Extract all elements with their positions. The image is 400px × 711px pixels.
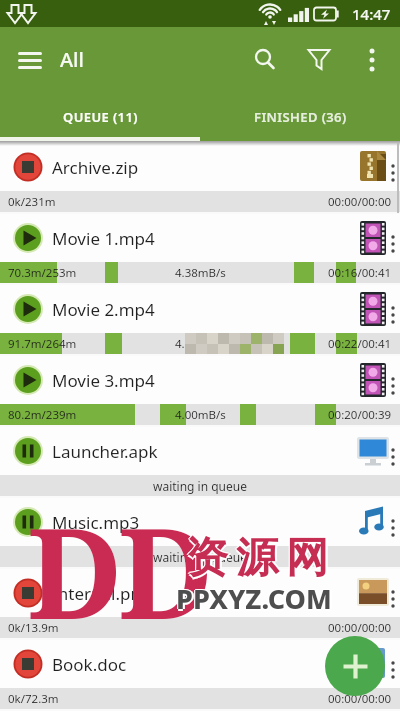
button[interactable]: Launcher.apk (0, 427, 400, 475)
button[interactable] (325, 636, 385, 696)
staticText: Book.doc (52, 653, 127, 676)
button[interactable] (352, 40, 392, 80)
button[interactable]: Book.doc (0, 640, 400, 688)
staticText: 00:20/00:39 (328, 407, 392, 423)
staticText: 0k/13.9m (8, 620, 59, 636)
staticText: 00:16/00:41 (328, 265, 392, 281)
staticText: Movie 1.mp4 (52, 227, 155, 250)
staticText: PPXYZ.COM (178, 580, 334, 617)
staticText: Music.mp3 (52, 511, 140, 534)
staticText: waiting in queue (153, 478, 247, 494)
staticText: FINISHED (36) (254, 108, 347, 126)
staticText: 资源网 (184, 532, 334, 585)
staticText: QUEUE (11) (63, 108, 138, 126)
button[interactable] (245, 40, 285, 80)
button[interactable]: Archive.zip (0, 143, 400, 191)
staticText: PPXYZ.COM (176, 580, 332, 617)
staticText: 80.2m/239m (8, 407, 77, 423)
button[interactable]: QUEUE (11) (0, 93, 200, 141)
button[interactable]: Movie 2.mp4 (0, 285, 400, 333)
staticText: 0k/231m (8, 194, 56, 210)
button[interactable] (298, 39, 340, 81)
staticText: 4.00mB/s (175, 407, 226, 423)
staticText: 14:47 (352, 4, 391, 24)
staticText: 4.38mB/s (175, 265, 226, 281)
button[interactable]: Internal.png (0, 569, 400, 617)
staticText: waiting in queue (153, 549, 247, 565)
staticText: Movie 2.mp4 (52, 298, 155, 321)
staticText: Launcher.apk (52, 440, 158, 463)
staticText: Internal.png (52, 582, 152, 605)
staticText: PPXYZ.COM (176, 579, 332, 616)
staticText: Movie 3.mp4 (52, 369, 155, 392)
staticText: PPXYZ.COM (176, 582, 332, 619)
staticText: 00:00/00:00 (328, 194, 392, 210)
staticText: 00:22/00:41 (328, 336, 392, 352)
button[interactable]: Movie 3.mp4 (0, 356, 400, 404)
staticText: 资源网 (182, 532, 332, 585)
staticText: All (60, 46, 84, 73)
button[interactable]: Music.mp3 (0, 498, 400, 546)
staticText: 资源网 (182, 534, 332, 587)
staticText: 资源网 (182, 531, 332, 584)
staticText: 0k/72.3m (8, 691, 59, 707)
button[interactable]: FINISHED (36) (200, 93, 400, 141)
staticText: 00:00/00:00 (328, 620, 392, 636)
staticText: 70.3m/253m (8, 265, 77, 281)
staticText: PPXYZ.COM (175, 580, 331, 617)
staticText: Archive.zip (52, 156, 139, 179)
staticText: 00:00/00:00 (328, 691, 392, 707)
staticText: DD (27, 485, 209, 655)
button[interactable]: Movie 1.mp4 (0, 214, 400, 262)
staticText: 91.7m/264m (8, 336, 77, 352)
staticText: 4.38mB/s (175, 336, 226, 352)
button[interactable] (10, 40, 50, 80)
staticText: 资源网 (181, 532, 331, 585)
